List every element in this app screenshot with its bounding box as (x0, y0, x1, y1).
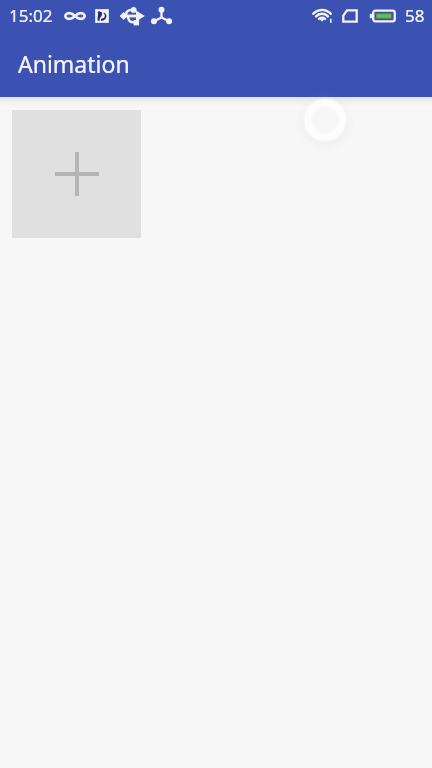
staticText: Animation (18, 48, 130, 79)
staticText: 15:02 (9, 4, 53, 27)
button[interactable]: Add animation (12, 110, 141, 238)
staticText: 58 (405, 4, 425, 27)
